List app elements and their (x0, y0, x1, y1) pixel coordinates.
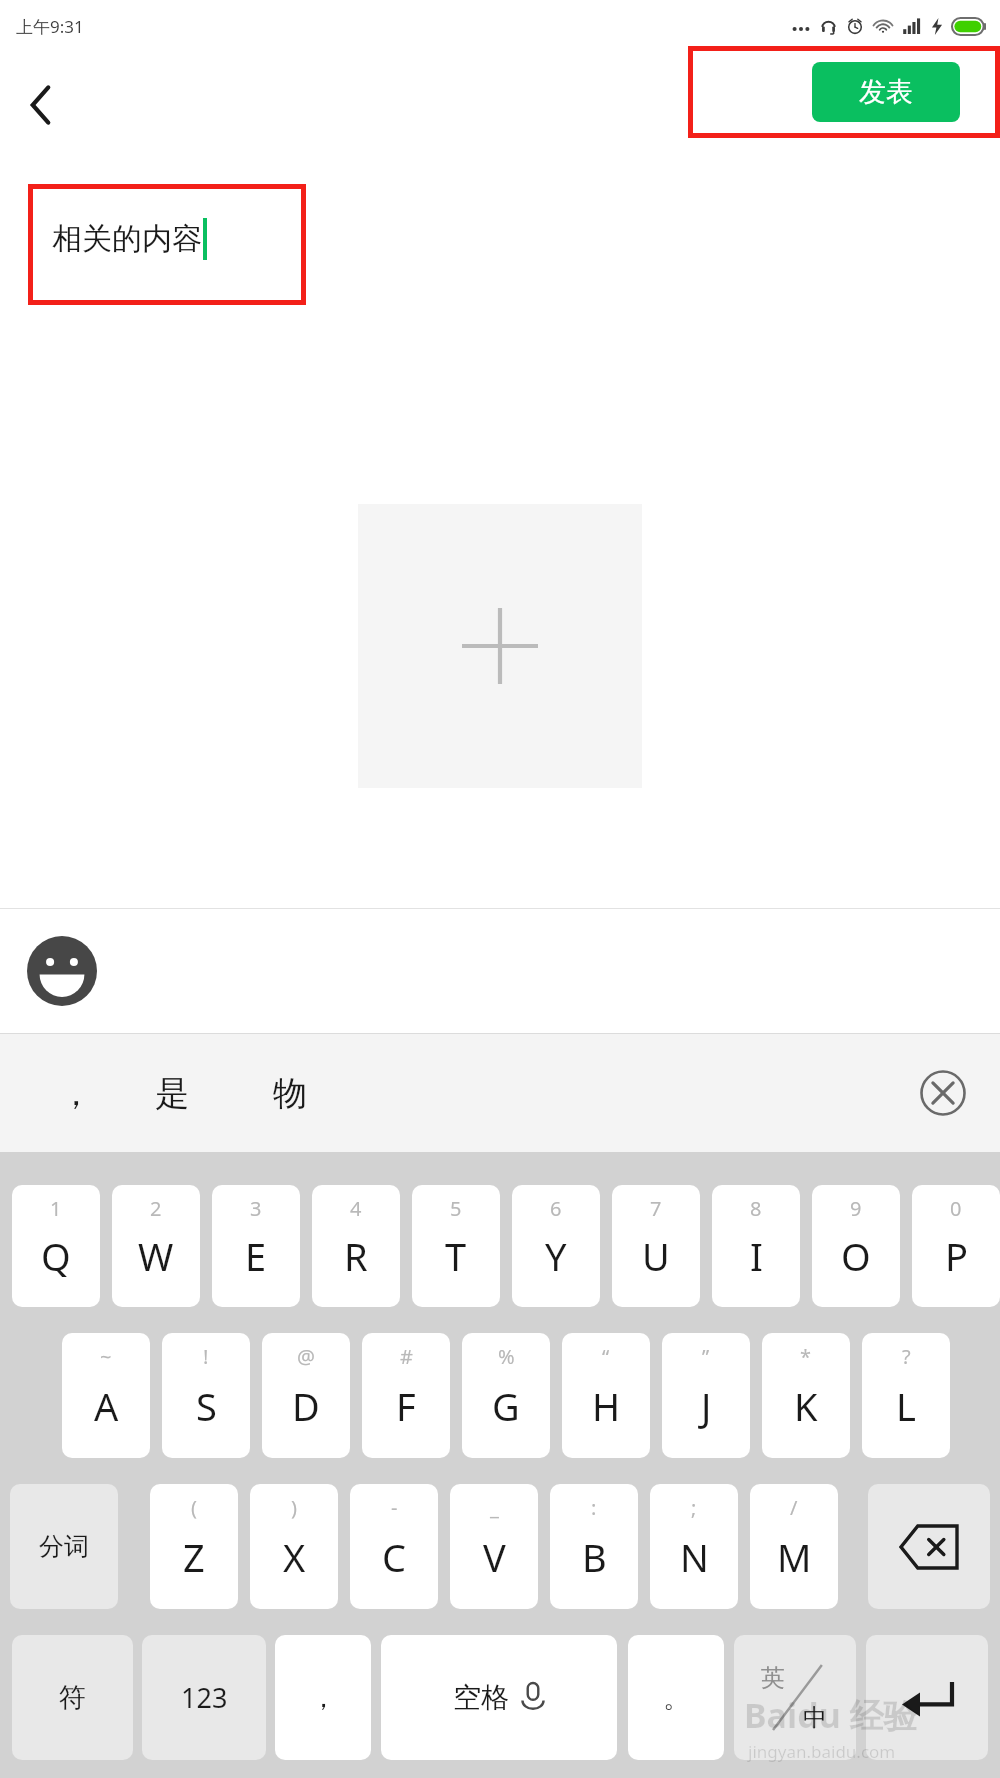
staticText: jingyan.baidu.com (748, 1740, 896, 1763)
staticText: F (396, 1380, 416, 1432)
button[interactable]: ” (662, 1333, 750, 1458)
staticText: Baidu 经验 (744, 1692, 918, 1738)
button[interactable]: 相关的内容 (52, 218, 207, 260)
button[interactable]: 发表 (812, 62, 960, 122)
button[interactable]: 4 (312, 1185, 400, 1307)
button[interactable]: ? (862, 1333, 950, 1458)
staticText: 7 (650, 1195, 662, 1222)
staticText: B (582, 1531, 607, 1583)
button[interactable]: Close keyboard (912, 1062, 974, 1124)
button[interactable]: 3 (212, 1185, 300, 1307)
button[interactable]: 是 (112, 1043, 232, 1143)
staticText: ~ (100, 1343, 112, 1370)
staticText: / (790, 1494, 798, 1521)
button[interactable]: 物 (232, 1043, 348, 1143)
staticText: 4 (350, 1195, 362, 1222)
staticText: W (138, 1230, 174, 1282)
staticText: S (196, 1380, 217, 1432)
button[interactable]: 7 (612, 1185, 700, 1307)
staticText: C (382, 1531, 407, 1583)
staticText: N (680, 1531, 709, 1583)
button[interactable]: Add image (358, 504, 642, 788)
button[interactable]: 5 (412, 1185, 500, 1307)
button[interactable]: @ (262, 1333, 350, 1458)
staticText: J (701, 1380, 712, 1432)
staticText: G (492, 1380, 520, 1432)
staticText: 符 (59, 1681, 86, 1715)
button[interactable]: ( (150, 1484, 238, 1609)
staticText: O (841, 1230, 871, 1282)
button[interactable]: 符 (12, 1635, 133, 1760)
button[interactable]: % (462, 1333, 550, 1458)
button[interactable]: 6 (512, 1185, 600, 1307)
staticText: 5 (450, 1195, 462, 1222)
staticText: ( (191, 1494, 197, 1521)
staticText: H (592, 1380, 621, 1432)
staticText: ) (291, 1494, 297, 1521)
button[interactable]: 9 (812, 1185, 900, 1307)
staticText: 1 (50, 1195, 62, 1222)
staticText: ! (203, 1343, 209, 1370)
staticText: M (777, 1531, 812, 1583)
button[interactable]: ， (40, 1043, 112, 1143)
button[interactable]: 2 (112, 1185, 200, 1307)
button[interactable]: ! (162, 1333, 250, 1458)
staticText: 空格 (453, 1680, 509, 1715)
button[interactable]: 123 (142, 1635, 266, 1760)
staticText: 6 (550, 1195, 562, 1222)
staticText: Y (545, 1230, 567, 1282)
button[interactable]: 8 (712, 1185, 800, 1307)
button[interactable]: _ (450, 1484, 538, 1609)
staticText: % (498, 1343, 515, 1370)
staticText: @ (297, 1343, 315, 1370)
button[interactable]: Emoji (22, 931, 102, 1011)
staticText: E (245, 1230, 267, 1282)
staticText: 发表 (859, 75, 913, 109)
staticText: R (344, 1230, 368, 1282)
staticText: # (400, 1343, 413, 1370)
staticText: “ (602, 1343, 610, 1370)
staticText: L (896, 1380, 916, 1432)
button[interactable]: 1 (12, 1185, 100, 1307)
staticText: 分词 (39, 1531, 89, 1562)
staticText: 123 (181, 1679, 228, 1716)
button[interactable]: # (362, 1333, 450, 1458)
staticText: D (292, 1380, 320, 1432)
button[interactable]: “ (562, 1333, 650, 1458)
button[interactable]: Enter (866, 1635, 988, 1760)
button[interactable]: Language switch (734, 1635, 856, 1760)
button[interactable]: : (550, 1484, 638, 1609)
staticText: * (800, 1343, 812, 1370)
staticText: P (945, 1230, 968, 1282)
button[interactable]: - (350, 1484, 438, 1609)
staticText: ， (59, 1072, 93, 1115)
staticText: 9 (850, 1195, 862, 1222)
staticText: Q (41, 1230, 71, 1282)
staticText: 0 (950, 1195, 962, 1222)
staticText: 是 (155, 1072, 189, 1115)
button[interactable]: ; (650, 1484, 738, 1609)
button[interactable]: 。 (628, 1635, 724, 1760)
staticText: - (391, 1494, 398, 1521)
button[interactable]: ， (275, 1635, 371, 1760)
staticText: 中 (803, 1703, 827, 1733)
staticText: X (283, 1531, 306, 1583)
button[interactable]: 空格 (381, 1635, 617, 1760)
staticText: 英 (761, 1663, 785, 1693)
button[interactable]: / (750, 1484, 838, 1609)
staticText: 2 (150, 1195, 162, 1222)
staticText: 相关的内容 (52, 220, 202, 258)
button[interactable]: Backspace (868, 1484, 990, 1609)
staticText: 。 (663, 1681, 690, 1715)
staticText: T (445, 1230, 467, 1282)
button[interactable]: * (762, 1333, 850, 1458)
button[interactable]: 分词 (10, 1484, 118, 1609)
button[interactable]: 0 (912, 1185, 1000, 1307)
staticText: K (794, 1380, 818, 1432)
button[interactable]: Back (10, 74, 72, 136)
button[interactable]: ~ (62, 1333, 150, 1458)
staticText: _ (490, 1494, 499, 1521)
button[interactable]: ) (250, 1484, 338, 1609)
staticText: ? (902, 1343, 911, 1370)
staticText: V (483, 1531, 506, 1583)
